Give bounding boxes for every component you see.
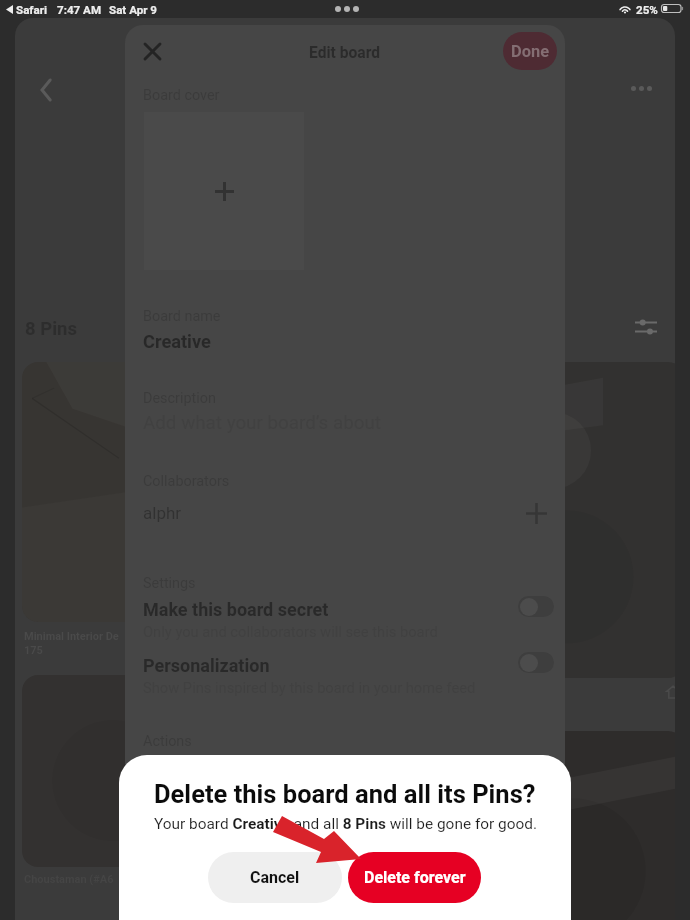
staticText: 25%	[636, 3, 658, 17]
button[interactable]: Make this board secret	[125, 597, 565, 652]
staticText: Minimal Interior De 175	[24, 630, 244, 657]
staticText: Board cover	[143, 87, 220, 104]
button[interactable]: Personalization	[125, 653, 565, 708]
staticText: Collaborators	[143, 473, 230, 490]
staticText: t tone? Tracker e Bandida	[484, 682, 669, 709]
staticText: Board name	[143, 308, 221, 325]
staticText: Edit board	[309, 44, 381, 62]
staticText: 8 Pins	[25, 318, 77, 340]
staticText: Make this board secret	[143, 599, 329, 620]
staticText: Cancel	[250, 868, 300, 887]
button[interactable]: Cancel	[208, 852, 342, 903]
staticText: Delete forever	[364, 868, 466, 887]
staticText: Done	[511, 42, 550, 61]
staticText: Description	[143, 390, 216, 407]
staticText: Sat Apr 9	[109, 3, 157, 17]
staticText: Safari	[16, 3, 48, 17]
button[interactable]: Done	[503, 32, 557, 70]
staticText: Personalization	[143, 655, 270, 676]
staticText: Creative	[143, 331, 211, 352]
button[interactable]: Close	[134, 33, 170, 69]
staticText: alphr	[143, 503, 182, 523]
staticText: Your board Creative and all 8 Pins will …	[154, 815, 537, 833]
staticText: Settings	[143, 575, 196, 592]
staticText: Choustaman (#A6	[24, 873, 244, 886]
staticText: Actions	[143, 733, 192, 750]
staticText: 7:47 AM	[57, 3, 102, 17]
staticText: Delete this board and all its Pins?	[154, 779, 536, 809]
button[interactable]: Delete forever	[348, 852, 481, 903]
